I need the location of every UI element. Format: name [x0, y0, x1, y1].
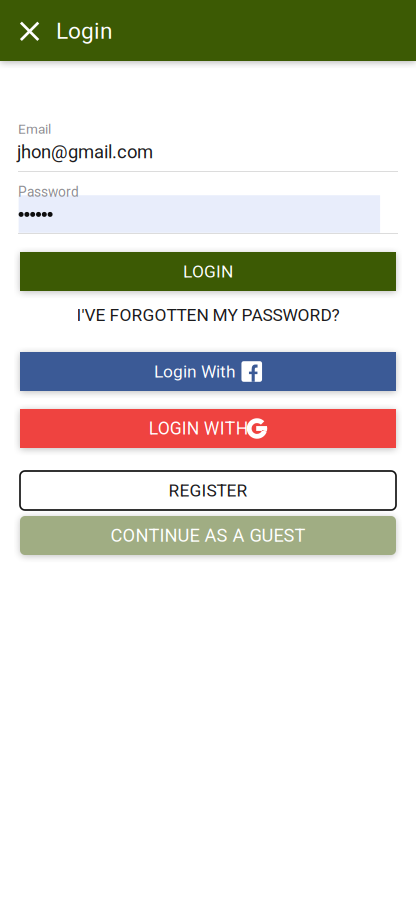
- staticText: Email: [18, 121, 51, 137]
- button[interactable]: Close: [11, 12, 49, 50]
- button[interactable]: CONTINUE AS A GUEST: [20, 516, 396, 555]
- button[interactable]: I'VE FORGOTTEN MY PASSWORD?: [20, 303, 396, 327]
- staticText: CONTINUE AS A GUEST: [110, 525, 305, 546]
- staticText: LOGIN: [183, 261, 233, 282]
- button[interactable]: Login With: [20, 352, 396, 391]
- button[interactable]: Login: [56, 12, 176, 50]
- staticText: Login: [56, 18, 113, 44]
- staticText: jhon@gmail.com: [17, 141, 153, 163]
- staticText: LOGIN WITH: [149, 418, 249, 439]
- button[interactable]: LOGIN WITH: [20, 409, 396, 448]
- button[interactable]: LOGIN: [20, 252, 396, 291]
- staticText: I'VE FORGOTTEN MY PASSWORD?: [76, 305, 339, 325]
- staticText: Password: [18, 184, 79, 200]
- button[interactable]: REGISTER: [20, 471, 396, 510]
- staticText: Login With: [154, 361, 236, 382]
- staticText: REGISTER: [168, 480, 247, 501]
